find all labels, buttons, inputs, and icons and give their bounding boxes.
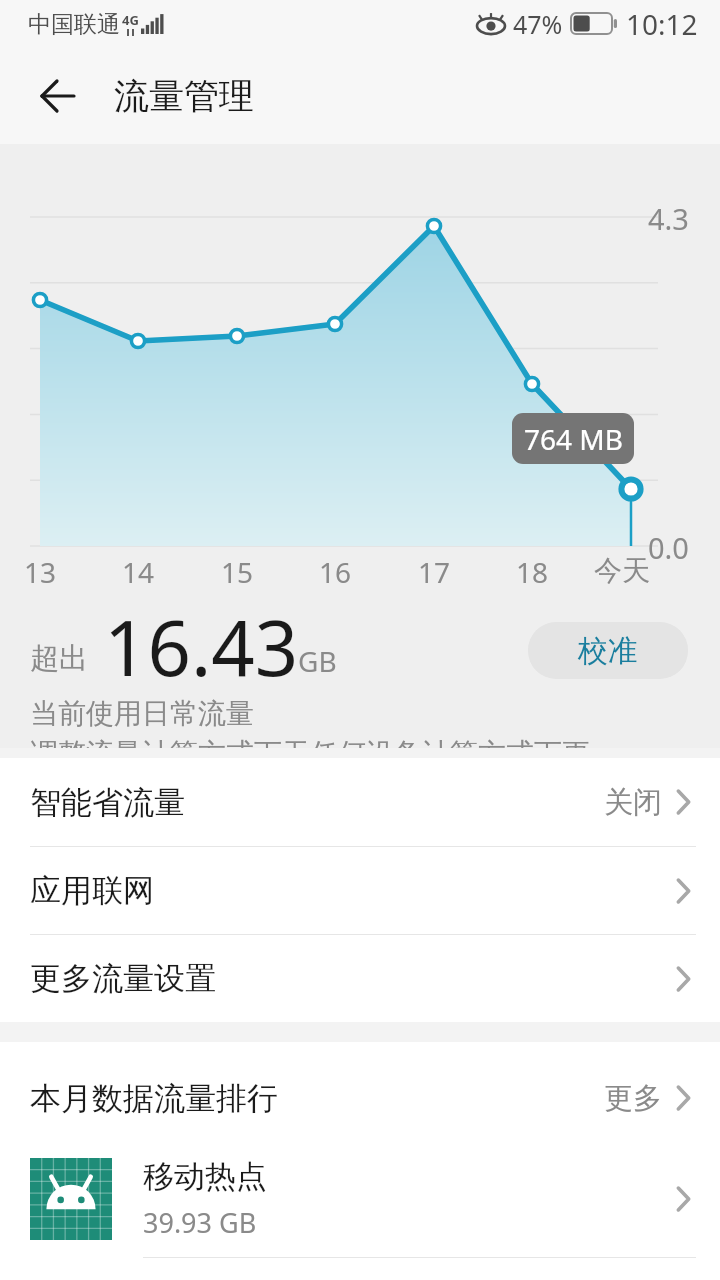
button[interactable]: 本月数据流量排行: [0, 1056, 720, 1140]
staticText: 16.43: [104, 595, 299, 699]
staticText: 移动热点: [143, 1157, 267, 1196]
staticText: 校准: [578, 632, 638, 670]
staticText: 智能省流量: [30, 783, 185, 822]
staticText: 17: [418, 553, 451, 591]
staticText: 15: [221, 553, 254, 591]
staticText: 调整流量计算方式下无任何设备计算方式下更: [30, 736, 590, 748]
staticText: 应用联网: [30, 871, 154, 910]
staticText: 中国联通: [28, 10, 120, 39]
staticText: 更多: [604, 1080, 662, 1117]
staticText: GB: [298, 642, 337, 680]
staticText: 流量管理: [114, 74, 254, 118]
staticText: 47%: [513, 7, 563, 41]
staticText: 10:12: [626, 5, 698, 43]
staticText: 0.0: [648, 528, 689, 567]
staticText: 今天: [594, 553, 650, 588]
staticText: 超出: [30, 640, 88, 677]
staticText: 764 MB: [524, 420, 623, 458]
button[interactable]: 移动热点: [0, 1140, 720, 1257]
staticText: 14: [122, 553, 155, 591]
staticText: 16: [319, 553, 352, 591]
button[interactable]: [40, 80, 76, 112]
staticText: 13: [24, 553, 57, 591]
staticText: 关闭: [604, 784, 662, 821]
button[interactable]: 更多流量设置: [0, 935, 720, 1022]
button[interactable]: 智能省流量: [0, 758, 720, 846]
staticText: 本月数据流量排行: [30, 1079, 278, 1118]
staticText: 当前使用日常流量: [30, 696, 254, 731]
staticText: 39.93 GB: [143, 1204, 257, 1241]
button[interactable]: 应用联网: [0, 847, 720, 934]
staticText: 4G: [122, 11, 139, 29]
staticText: 18: [516, 553, 549, 591]
staticText: 更多流量设置: [30, 959, 216, 998]
staticText: 4.3: [648, 199, 689, 238]
button[interactable]: 校准: [528, 622, 688, 679]
